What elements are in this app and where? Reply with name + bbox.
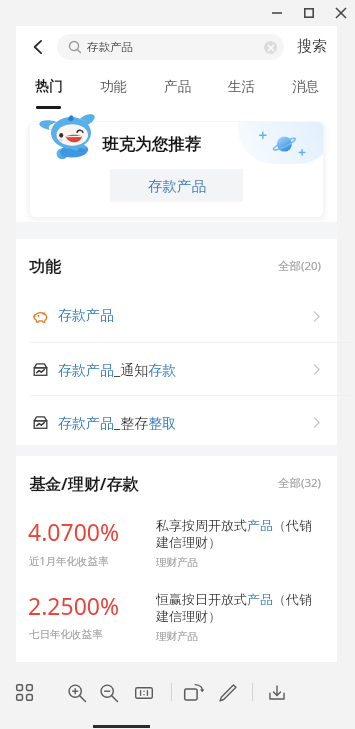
staticText: 班克为您推荐	[102, 134, 201, 155]
staticText: 基金/理财/存款	[29, 473, 139, 495]
button[interactable]: 存款产品_整存整取	[16, 396, 337, 448]
button[interactable]: 存款产品_通知存款	[16, 343, 337, 395]
button[interactable]: 产品	[145, 64, 209, 110]
button[interactable]: Clear text	[264, 41, 277, 54]
button[interactable]: 存款产品	[110, 169, 243, 202]
staticText: 产品	[164, 78, 191, 95]
staticText: 近1月年化收益率	[29, 554, 109, 568]
staticText: 生活	[228, 78, 255, 95]
button[interactable]: 班克为您推荐	[30, 122, 323, 217]
button[interactable]: Actual size	[129, 679, 159, 707]
button[interactable]: Minimize	[262, 0, 292, 26]
staticText: 存款产品	[148, 177, 206, 195]
staticText: 存款产品	[58, 307, 114, 325]
button[interactable]: 功能	[81, 64, 145, 110]
staticText: 七日年化收益率	[29, 628, 103, 641]
staticText: 2.2500%	[28, 590, 120, 621]
staticText: 功能	[100, 78, 127, 95]
staticText: 4.0700%	[28, 516, 120, 547]
staticText: 热门	[35, 78, 63, 96]
button[interactable]: 4.0700%	[16, 506, 337, 580]
staticText: 理财产品	[156, 630, 198, 643]
button[interactable]: Rotate	[178, 678, 210, 708]
button[interactable]: Zoom in	[62, 679, 92, 707]
staticText: 全部(32)	[278, 475, 322, 491]
button[interactable]: 全部(20)	[276, 256, 324, 276]
staticText: 存款产品_整存整取	[58, 413, 177, 432]
button[interactable]: 存款产品	[57, 34, 284, 60]
button[interactable]: Maximize	[294, 0, 324, 26]
staticText: 存款产品_通知存款	[58, 360, 177, 379]
button[interactable]: 全部(32)	[276, 473, 324, 493]
button[interactable]: 消息	[273, 64, 337, 110]
staticText: 搜索	[297, 37, 327, 56]
button[interactable]: Back	[24, 33, 52, 61]
staticText: 存款产品	[87, 40, 133, 54]
staticText: 理财产品	[156, 556, 198, 569]
staticText: 全部(20)	[278, 258, 322, 274]
button[interactable]: 搜索	[291, 32, 333, 60]
button[interactable]: 生活	[209, 64, 273, 110]
staticText: 私享按周开放式产品（代销建信理财）	[156, 517, 320, 551]
button[interactable]: Close	[327, 0, 355, 26]
button[interactable]: Edit	[213, 679, 243, 707]
staticText: 消息	[292, 78, 319, 95]
button[interactable]: 2.2500%	[16, 580, 337, 654]
staticText: 恒赢按日开放式产品（代销建信理财）	[156, 591, 320, 625]
button[interactable]: Thumbnails	[10, 679, 39, 706]
button[interactable]: 热门	[16, 64, 81, 110]
button[interactable]: Save	[263, 679, 291, 705]
button[interactable]: 存款产品	[16, 290, 337, 342]
button[interactable]: Zoom out	[94, 679, 124, 707]
staticText: 功能	[29, 257, 61, 277]
